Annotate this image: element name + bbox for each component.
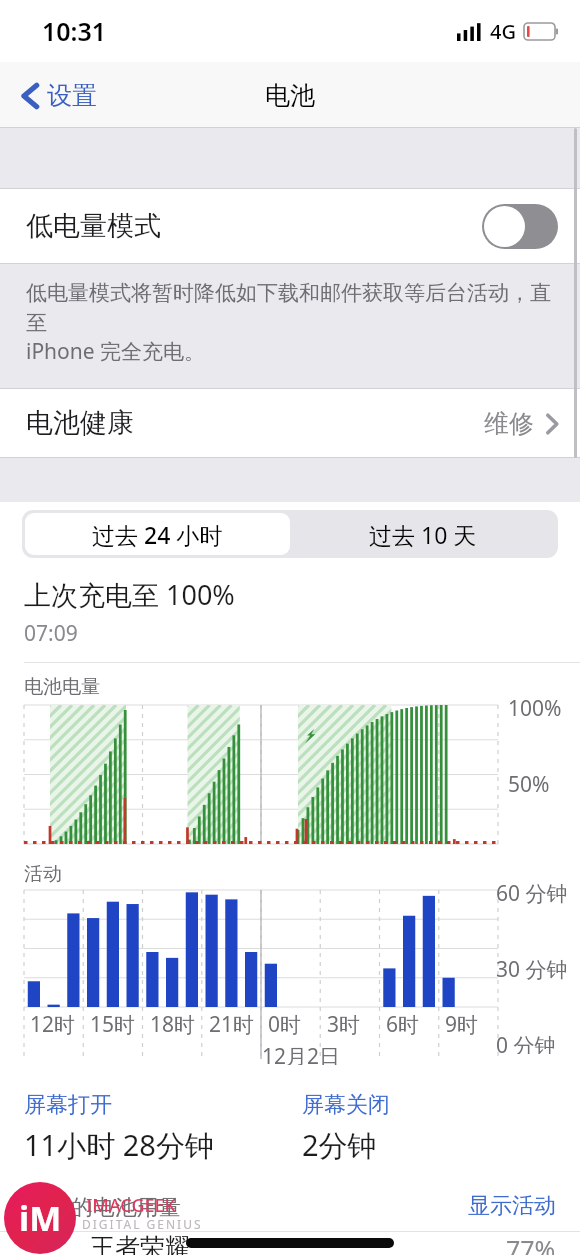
staticText: DIGITAL GENIUS [82,1216,203,1232]
staticText: 77% [506,1232,556,1255]
staticText: 4G [490,18,516,45]
staticText: 低电量模式将暂时降低如下载和邮件获取等后台活动，直至 [26,280,554,337]
button[interactable]: 过去 10 天 [290,513,555,555]
button[interactable]: 显示活动 [468,1192,556,1220]
staticText: 0 分钟 [496,1031,556,1054]
staticText: 电池健康 [26,406,134,440]
staticText: 6时 [386,1010,420,1039]
button[interactable]: 王者荣耀 [0,1232,580,1255]
staticText: 60 分钟 [496,879,568,908]
staticText: 活动 [24,862,62,886]
staticText: IMACGEEK [86,1193,176,1218]
staticText: 过去 24 小时 [92,519,223,550]
staticText: 王者荣耀 [90,1232,190,1255]
staticText: 07:09 [24,619,78,648]
staticText: 11小时 28分钟 [24,1125,214,1165]
button[interactable]: 低电量模式开关 [482,204,558,249]
staticText: 9时 [445,1010,479,1039]
staticText: 100% [508,694,562,723]
staticText: 过去 10 天 [369,519,477,550]
staticText: 12时 [30,1010,76,1039]
staticText: 0时 [268,1010,302,1039]
staticText: 15时 [90,1010,136,1039]
staticText: 电池 [265,80,315,111]
staticText: 30 分钟 [496,955,568,984]
staticText: 50% [508,770,550,799]
staticText: 显示活动 [468,1192,556,1220]
staticText: 21时 [209,1010,255,1039]
staticText: iPhone 完全充电。 [26,337,206,366]
staticText: 电池电量 [24,675,100,699]
staticText: 维修 [484,408,534,439]
staticText: iM [19,1195,62,1241]
button[interactable]: 低电量模式 [0,189,580,263]
staticText: 设置 [47,80,97,111]
staticText: 18时 [150,1010,196,1039]
staticText: 屏幕打开 [24,1091,112,1119]
staticText: 3时 [327,1010,361,1039]
button[interactable]: 过去 24 小时 [25,513,290,555]
staticText: App 的电池用量 [24,1191,468,1221]
staticText: 12月2日 [262,1042,341,1065]
button[interactable]: 电池健康 [0,389,580,457]
staticText: 上次充电至 100% [24,576,235,613]
staticText: 2分钟 [302,1125,377,1165]
staticText: 10:31 [42,14,107,48]
staticText: 屏幕关闭 [302,1091,390,1119]
staticText: 低电量模式 [26,209,161,243]
button[interactable]: 设置 [14,74,105,117]
